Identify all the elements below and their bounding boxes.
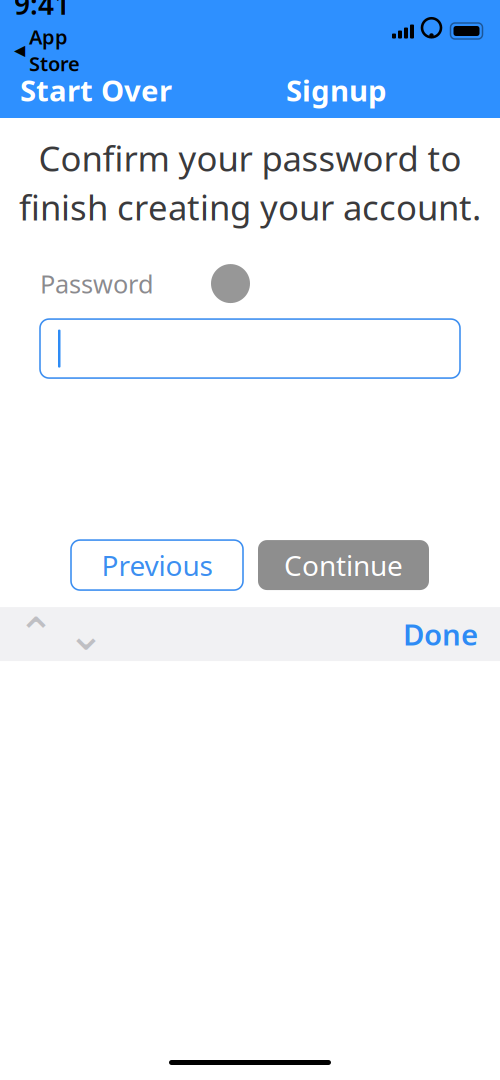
button[interactable]: Next field (64, 609, 108, 659)
staticText: ⌃ (17, 608, 55, 660)
staticText: Password (40, 267, 154, 300)
button[interactable]: Signup (281, 63, 392, 116)
button[interactable]: Previous field (14, 609, 58, 659)
staticText: Start Over (20, 70, 172, 109)
staticText: ◀ (14, 42, 25, 58)
button[interactable]: Done (394, 606, 487, 663)
staticText: 9:41 (14, 0, 70, 23)
staticText: Confirm your password to (38, 135, 461, 181)
staticText: App Store (29, 23, 80, 77)
button[interactable]: Continue (258, 540, 429, 590)
button[interactable]: Start Over (15, 63, 177, 116)
button[interactable]: ◀ (14, 23, 110, 77)
staticText: Signup (286, 70, 387, 109)
staticText: Done (403, 615, 478, 654)
staticText: Previous (101, 546, 212, 584)
staticText: finish creating your account. (19, 184, 481, 230)
button[interactable]: Previous (71, 540, 243, 590)
staticText: Continue (284, 546, 403, 584)
staticText: ⌄ (67, 608, 105, 660)
